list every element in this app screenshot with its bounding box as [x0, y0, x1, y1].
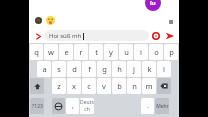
button[interactable]: .: [141, 98, 154, 114]
staticText: w: [48, 47, 54, 57]
button[interactable]: f: [82, 61, 96, 77]
button[interactable]: g: [97, 61, 111, 77]
button[interactable]: Emoji reaction: [46, 16, 55, 25]
staticText: l: [163, 64, 165, 74]
staticText: lu: [150, 0, 156, 7]
button[interactable]: Sender avatar: [35, 17, 42, 24]
button[interactable]: w: [44, 44, 58, 60]
button[interactable]: u: [119, 44, 133, 60]
button[interactable]: ?123: [30, 98, 44, 114]
staticText: .: [147, 101, 149, 111]
button[interactable]: ,: [66, 98, 79, 114]
button[interactable]: a: [37, 61, 51, 77]
button[interactable]: l: [157, 61, 171, 77]
button[interactable]: v: [97, 78, 111, 94]
staticText: Mehr: [156, 103, 169, 110]
staticText: u: [124, 47, 129, 57]
staticText: p: [169, 47, 174, 57]
button[interactable]: e: [59, 44, 73, 60]
staticText: f: [88, 64, 91, 74]
staticText: e: [64, 47, 69, 57]
staticText: h: [117, 64, 122, 74]
button[interactable]: y: [104, 44, 118, 60]
staticText: a: [42, 64, 47, 74]
button[interactable]: Emoji: [151, 31, 161, 41]
button[interactable]: t: [89, 44, 103, 60]
staticText: m: [145, 81, 153, 91]
staticText: k: [147, 64, 152, 74]
staticText: s: [57, 64, 61, 74]
staticText: v: [102, 81, 106, 91]
button[interactable]: [52, 98, 65, 114]
staticText: z: [57, 81, 61, 91]
button[interactable]: j: [127, 61, 141, 77]
button[interactable]: d: [67, 61, 81, 77]
staticText: ?123: [32, 103, 43, 110]
button[interactable]: o: [149, 44, 163, 60]
staticText: ,: [72, 101, 74, 111]
staticText: o: [154, 47, 159, 57]
button[interactable]: z: [52, 78, 66, 94]
button[interactable]: m: [142, 78, 156, 94]
button[interactable]: k: [142, 61, 156, 77]
staticText: Deutsch: [80, 99, 94, 113]
button[interactable]: x: [67, 78, 81, 94]
staticText: Hoi süß mh: [49, 32, 82, 40]
button[interactable]: r: [74, 44, 88, 60]
staticText: n: [132, 81, 137, 91]
button[interactable]: Hoi süß mh: [44, 30, 149, 41]
staticText: b: [117, 81, 122, 91]
button[interactable]: s: [52, 61, 66, 77]
staticText: y: [109, 47, 113, 57]
button[interactable]: Deutsch: [80, 98, 94, 114]
button[interactable]: Contact avatar: [145, 0, 161, 11]
button[interactable]: Send: [163, 29, 176, 42]
staticText: q: [34, 47, 39, 57]
staticText: c: [87, 81, 91, 91]
staticText: t: [95, 47, 98, 57]
button[interactable]: q: [30, 44, 43, 60]
button[interactable]: p: [164, 44, 178, 60]
button[interactable]: c: [82, 78, 96, 94]
staticText: j: [133, 64, 135, 74]
button[interactable]: [30, 78, 44, 94]
button[interactable]: [157, 78, 171, 94]
button[interactable]: Mehr: [155, 98, 169, 114]
staticText: g: [102, 64, 107, 74]
staticText: i: [140, 47, 142, 57]
button[interactable]: Expand options: [32, 30, 44, 42]
button[interactable]: i: [134, 44, 148, 60]
button[interactable]: b: [112, 78, 126, 94]
button[interactable]: h: [112, 61, 126, 77]
staticText: x: [72, 81, 76, 91]
button[interactable]: n: [127, 78, 141, 94]
staticText: d: [72, 64, 77, 74]
staticText: r: [79, 47, 83, 57]
